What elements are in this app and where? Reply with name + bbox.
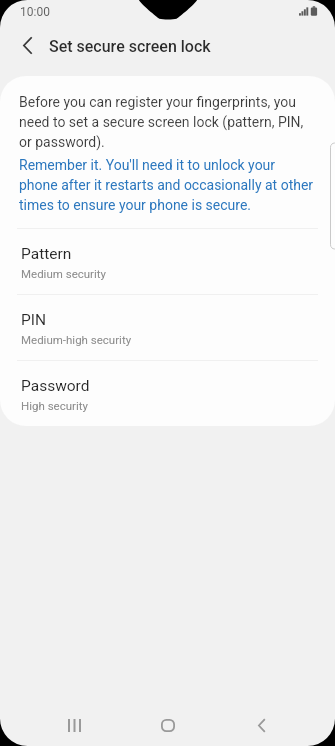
button[interactable]: Back	[230, 704, 292, 746]
staticText: Pattern	[21, 245, 72, 263]
button[interactable]: Password	[0, 361, 335, 426]
staticText: Before you can register your fingerprint…	[19, 94, 315, 151]
staticText: High security	[21, 399, 88, 412]
staticText: Set secure screen lock	[49, 37, 211, 56]
staticText: 10:00	[20, 5, 50, 19]
staticText: Password	[21, 377, 90, 395]
button[interactable]: PIN	[0, 295, 335, 360]
button[interactable]: Recent apps	[43, 704, 105, 746]
button[interactable]: Home	[137, 704, 199, 746]
staticText: Medium-high security	[21, 333, 132, 346]
staticText: Medium security	[21, 267, 106, 280]
button[interactable]: Pattern	[0, 229, 335, 294]
button[interactable]: Navigate up	[5, 28, 49, 62]
staticText: Remember it. You'll need it to unlock yo…	[19, 157, 315, 214]
staticText: PIN	[21, 311, 47, 329]
